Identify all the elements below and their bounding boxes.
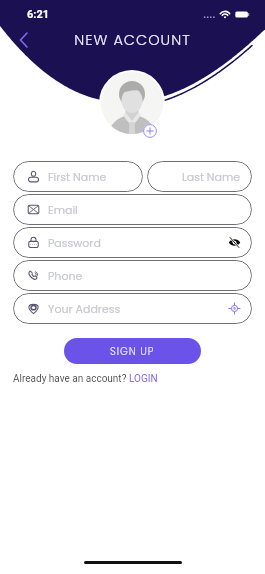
button[interactable]: Phone bbox=[13, 260, 252, 291]
button[interactable]: Back bbox=[12, 28, 36, 52]
staticText: Your Address bbox=[48, 301, 121, 316]
button[interactable]: Add photo bbox=[143, 124, 157, 138]
staticText: Password bbox=[48, 235, 101, 250]
button[interactable]: Your Address bbox=[13, 293, 252, 324]
staticText: Already have an account? bbox=[13, 373, 129, 385]
button[interactable]: SIGN UP bbox=[64, 338, 201, 364]
staticText: Phone bbox=[48, 268, 83, 283]
staticText: 6:21 bbox=[27, 8, 50, 21]
button[interactable]: First Name bbox=[13, 161, 143, 192]
button[interactable]: Last Name bbox=[147, 161, 252, 192]
staticText: SIGN UP bbox=[110, 344, 155, 358]
button[interactable]: LOGIN bbox=[129, 373, 158, 385]
staticText: Last Name bbox=[182, 169, 241, 184]
staticText: Email bbox=[48, 202, 78, 217]
staticText: LOGIN bbox=[129, 373, 158, 385]
staticText: First Name bbox=[48, 169, 107, 184]
staticText: NEW ACCOUNT bbox=[0, 30, 265, 50]
button[interactable]: Email bbox=[13, 194, 252, 225]
button[interactable]: Profile photo bbox=[99, 70, 165, 136]
button[interactable]: Password bbox=[13, 227, 252, 258]
